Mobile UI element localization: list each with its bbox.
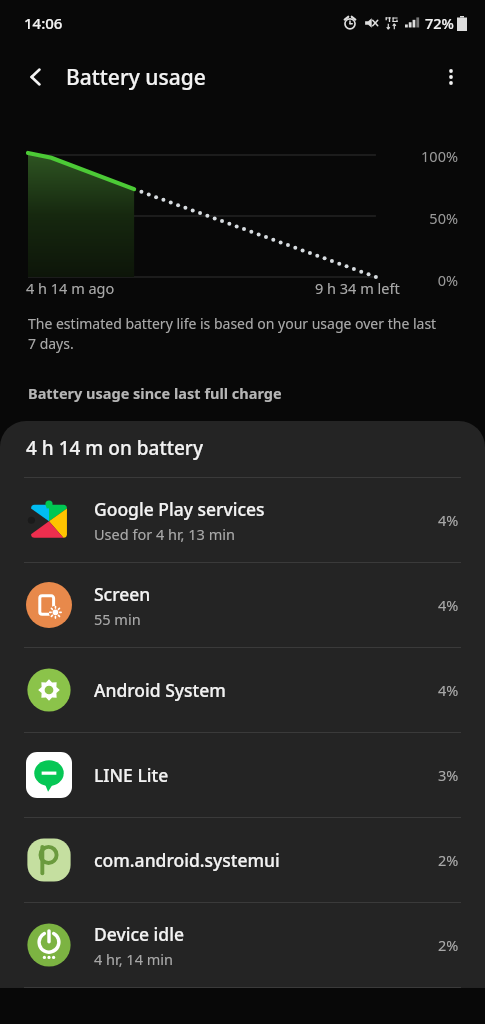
staticText: 72% bbox=[425, 13, 454, 33]
staticText: com.android.systemui bbox=[94, 848, 280, 872]
staticText: 14:06 bbox=[24, 13, 63, 33]
button[interactable]: com.android.systemui bbox=[0, 818, 485, 902]
staticText: 2% bbox=[438, 935, 459, 955]
staticText: 4% bbox=[438, 680, 459, 700]
staticText: 0% bbox=[437, 270, 458, 290]
staticText: 4 hr, 14 min bbox=[94, 949, 173, 969]
staticText: Screen bbox=[94, 582, 151, 606]
staticText: 4% bbox=[438, 595, 459, 615]
staticText: Battery usage bbox=[66, 63, 206, 92]
button[interactable]: Device idle bbox=[0, 903, 485, 987]
staticText: Google Play services bbox=[94, 497, 265, 521]
staticText: 9 h 34 m left bbox=[315, 278, 400, 298]
staticText: 2% bbox=[438, 850, 459, 870]
staticText: Device idle bbox=[94, 922, 184, 946]
button[interactable]: LINE Lite bbox=[0, 733, 485, 817]
staticText: 4 h 14 m on battery bbox=[26, 435, 203, 461]
button[interactable]: Android System bbox=[0, 648, 485, 732]
staticText: Battery usage since last full charge bbox=[28, 383, 282, 403]
staticText: 4% bbox=[438, 510, 459, 530]
staticText: 3% bbox=[438, 765, 459, 785]
button[interactable]: Back bbox=[14, 55, 58, 99]
staticText: 100% bbox=[421, 146, 458, 166]
button[interactable]: Google Play services bbox=[0, 478, 485, 562]
button[interactable]: Screen bbox=[0, 563, 485, 647]
button[interactable]: More options bbox=[429, 55, 473, 99]
staticText: 55 min bbox=[94, 609, 141, 629]
staticText: Android System bbox=[94, 678, 226, 702]
staticText: Used for 4 hr, 13 min bbox=[94, 524, 235, 544]
staticText: LINE Lite bbox=[94, 763, 169, 787]
staticText: 50% bbox=[429, 208, 458, 228]
staticText: 4 h 14 m ago bbox=[26, 278, 115, 298]
staticText: The estimated battery life is based on y… bbox=[28, 314, 445, 353]
